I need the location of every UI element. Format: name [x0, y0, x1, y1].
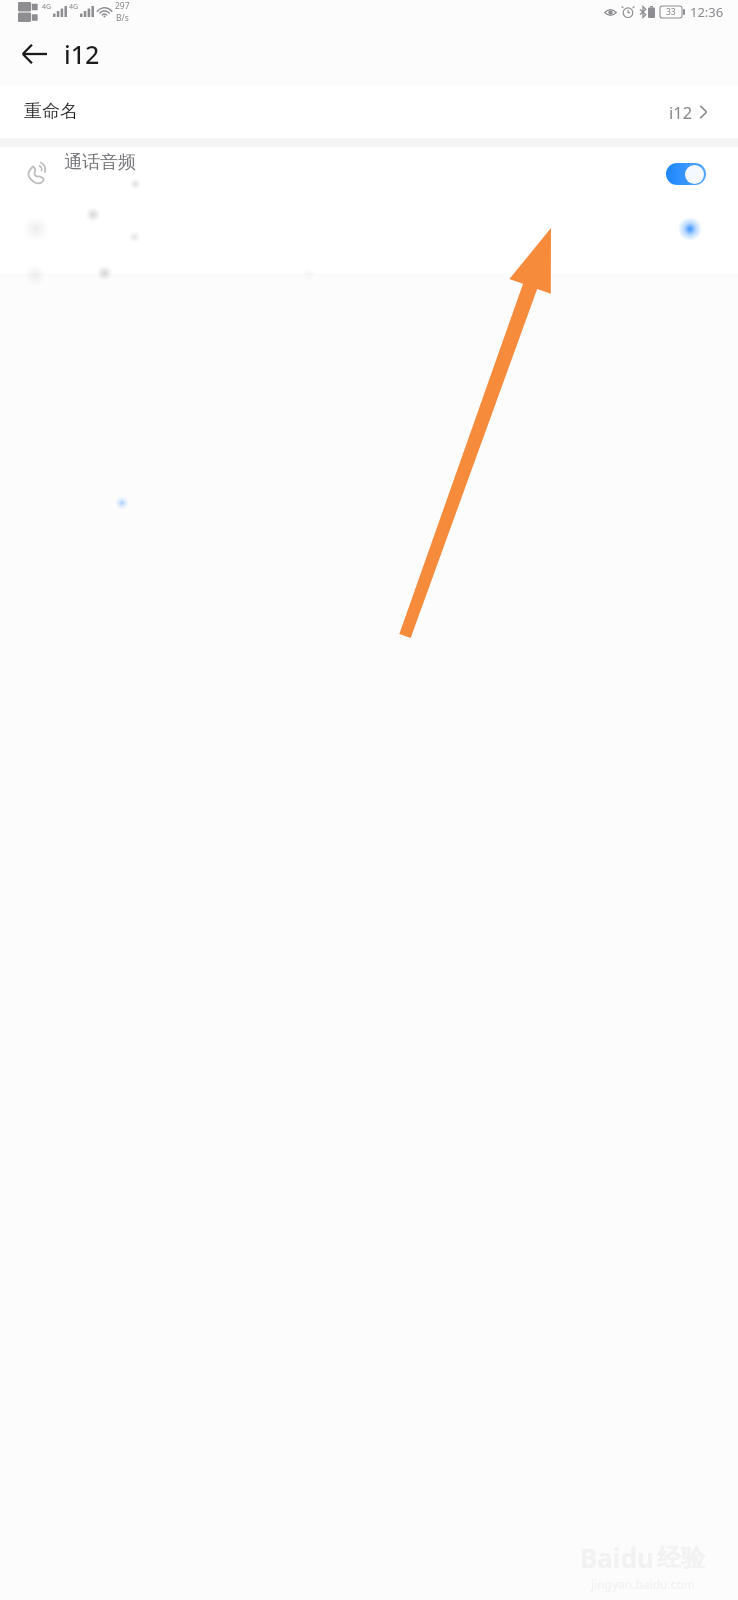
staticText: 4G [69, 2, 79, 12]
button[interactable]: 重命名 [0, 85, 738, 138]
button[interactable]: Back [10, 30, 58, 78]
button[interactable]: Call audio toggle [666, 163, 706, 185]
staticText: 297 [115, 0, 130, 12]
staticText: Baidu [580, 1540, 654, 1575]
staticText: 12:36 [690, 3, 724, 21]
staticText: B/s [116, 12, 129, 23]
staticText: 通话音频 [64, 151, 136, 174]
staticText: 33 [666, 6, 676, 18]
staticText: 4G [42, 2, 52, 12]
staticText: i12 [64, 37, 100, 71]
staticText: 经验 [657, 1543, 705, 1573]
staticText: i12 [669, 101, 693, 123]
staticText: 重命名 [24, 100, 78, 123]
staticText: jingyan.baidu.com [591, 1576, 695, 1592]
